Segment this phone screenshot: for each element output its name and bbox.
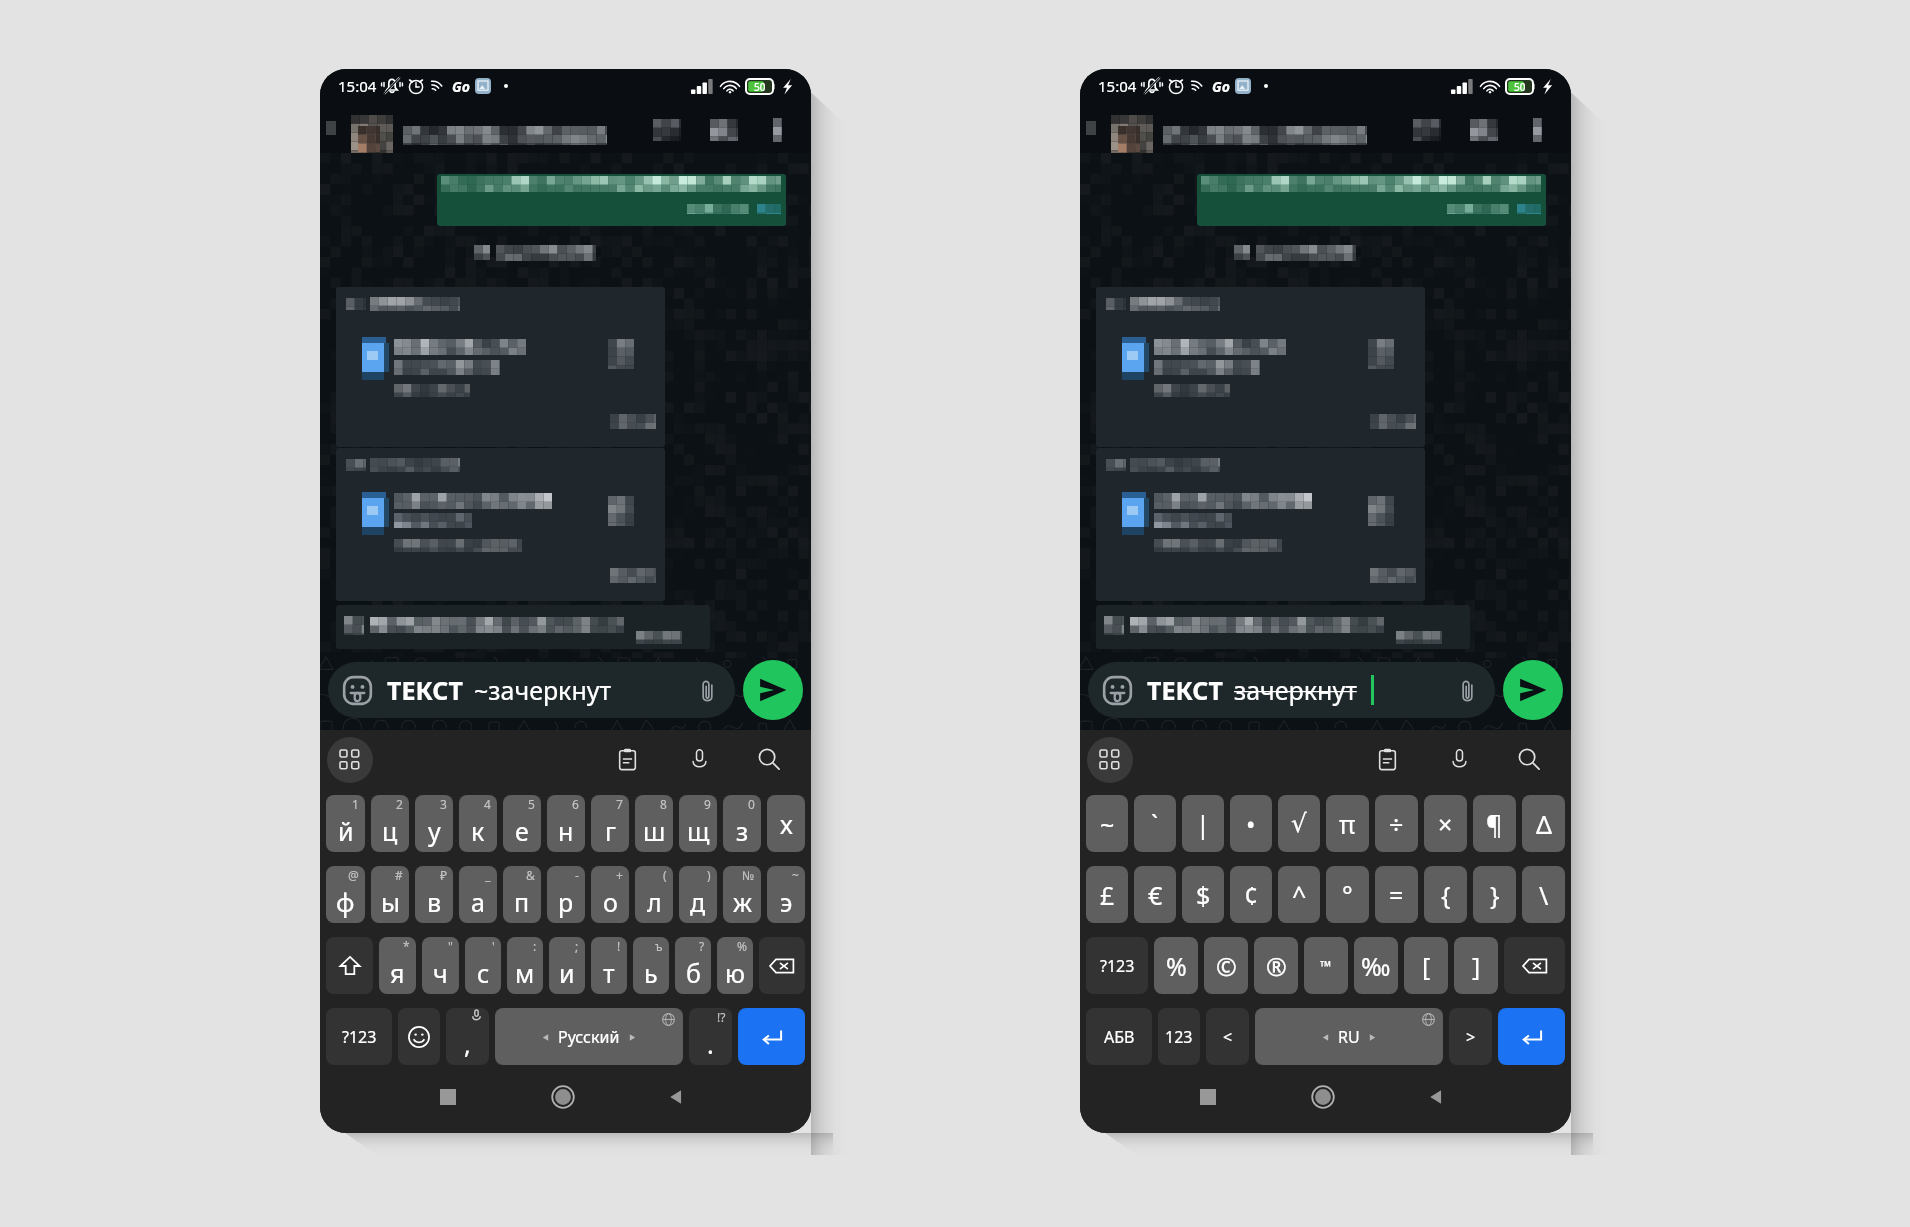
- button[interactable]: ТЕКСТ: [1088, 662, 1495, 718]
- button[interactable]: Send: [1503, 660, 1563, 720]
- button[interactable]: 123: [1158, 1008, 1200, 1065]
- button[interactable]: .: [689, 1008, 732, 1065]
- button[interactable]: у: [415, 795, 453, 852]
- button[interactable]: €: [1134, 866, 1176, 923]
- button[interactable]: Video call: [1409, 116, 1445, 144]
- button[interactable]: т: [591, 937, 627, 994]
- button[interactable]: ы: [371, 866, 409, 923]
- button[interactable]: Enter: [738, 1008, 805, 1065]
- button[interactable]: •: [1230, 795, 1272, 852]
- button[interactable]: Clipboard: [1368, 740, 1406, 778]
- button[interactable]: Call: [1466, 116, 1502, 144]
- button[interactable]: е: [503, 795, 541, 852]
- button[interactable]: ]: [1454, 937, 1498, 994]
- button[interactable]: $: [1182, 866, 1224, 923]
- button[interactable]: и: [549, 937, 585, 994]
- button[interactable]: к: [459, 795, 497, 852]
- button[interactable]: ш: [635, 795, 673, 852]
- button[interactable]: £: [1086, 866, 1128, 923]
- button[interactable]: Menu: [327, 737, 373, 783]
- button[interactable]: ¶: [1473, 795, 1516, 852]
- button[interactable]: }: [1473, 866, 1516, 923]
- button[interactable]: More options: [771, 116, 787, 144]
- button[interactable]: Clipboard: [608, 740, 646, 778]
- button[interactable]: Voice input: [680, 740, 718, 778]
- button[interactable]: ©: [1204, 937, 1248, 994]
- button[interactable]: ™: [1304, 937, 1348, 994]
- button[interactable]: Back: [656, 1077, 696, 1117]
- button[interactable]: More options: [1531, 116, 1547, 144]
- button[interactable]: Shift: [326, 937, 373, 994]
- button[interactable]: Search: [750, 740, 788, 778]
- button[interactable]: Русский: [495, 1008, 683, 1065]
- button[interactable]: \: [1522, 866, 1565, 923]
- button[interactable]: Back: [320, 115, 342, 141]
- button[interactable]: %: [1154, 937, 1198, 994]
- button[interactable]: <: [1206, 1008, 1249, 1065]
- button[interactable]: Emoji: [398, 1008, 440, 1065]
- button[interactable]: π: [1326, 795, 1369, 852]
- button[interactable]: о: [591, 866, 629, 923]
- button[interactable]: АБВ: [1086, 1008, 1152, 1065]
- button[interactable]: ф: [326, 866, 365, 923]
- button[interactable]: Voice input: [1440, 740, 1478, 778]
- button[interactable]: н: [547, 795, 585, 852]
- button[interactable]: ‰: [1354, 937, 1398, 994]
- button[interactable]: [: [1404, 937, 1448, 994]
- button[interactable]: й: [326, 795, 365, 852]
- button[interactable]: а: [459, 866, 497, 923]
- button[interactable]: ТЕКСТ: [328, 662, 735, 718]
- button[interactable]: √: [1278, 795, 1320, 852]
- button[interactable]: ,: [446, 1008, 489, 1065]
- button[interactable]: Search: [1510, 740, 1548, 778]
- button[interactable]: Call: [706, 116, 742, 144]
- button[interactable]: Backspace: [759, 937, 805, 994]
- button[interactable]: RU: [1255, 1008, 1443, 1065]
- button[interactable]: ?123: [1086, 937, 1148, 994]
- button[interactable]: Back: [1080, 115, 1102, 141]
- button[interactable]: {: [1424, 866, 1467, 923]
- button[interactable]: ^: [1278, 866, 1320, 923]
- button[interactable]: Menu: [1087, 737, 1133, 783]
- button[interactable]: ж: [723, 866, 761, 923]
- button[interactable]: л: [635, 866, 673, 923]
- button[interactable]: ю: [717, 937, 753, 994]
- button[interactable]: ®: [1254, 937, 1298, 994]
- button[interactable]: Back: [1416, 1077, 1456, 1117]
- button[interactable]: д: [679, 866, 717, 923]
- button[interactable]: м: [507, 937, 543, 994]
- button[interactable]: Δ: [1522, 795, 1565, 852]
- button[interactable]: з: [723, 795, 761, 852]
- button[interactable]: с: [465, 937, 501, 994]
- button[interactable]: ь: [633, 937, 669, 994]
- button[interactable]: ×: [1424, 795, 1467, 852]
- button[interactable]: ~: [1086, 795, 1128, 852]
- button[interactable]: °: [1326, 866, 1369, 923]
- button[interactable]: б: [675, 937, 711, 994]
- button[interactable]: Home: [543, 1077, 583, 1117]
- button[interactable]: Video call: [649, 116, 685, 144]
- button[interactable]: Enter: [1498, 1008, 1565, 1065]
- button[interactable]: п: [503, 866, 541, 923]
- button[interactable]: щ: [679, 795, 717, 852]
- button[interactable]: ч: [422, 937, 459, 994]
- button[interactable]: >: [1449, 1008, 1492, 1065]
- button[interactable]: э: [767, 866, 805, 923]
- button[interactable]: `: [1134, 795, 1176, 852]
- button[interactable]: Recents: [1188, 1077, 1228, 1117]
- button[interactable]: Send: [743, 660, 803, 720]
- button[interactable]: ÷: [1375, 795, 1418, 852]
- button[interactable]: Home: [1303, 1077, 1343, 1117]
- button[interactable]: в: [415, 866, 453, 923]
- button[interactable]: ¢: [1230, 866, 1272, 923]
- button[interactable]: х: [767, 795, 805, 852]
- button[interactable]: г: [591, 795, 629, 852]
- button[interactable]: =: [1375, 866, 1418, 923]
- button[interactable]: ?123: [326, 1008, 392, 1065]
- button[interactable]: ц: [371, 795, 409, 852]
- button[interactable]: р: [547, 866, 585, 923]
- button[interactable]: |: [1182, 795, 1224, 852]
- button[interactable]: Backspace: [1504, 937, 1565, 994]
- button[interactable]: я: [379, 937, 416, 994]
- button[interactable]: Recents: [428, 1077, 468, 1117]
